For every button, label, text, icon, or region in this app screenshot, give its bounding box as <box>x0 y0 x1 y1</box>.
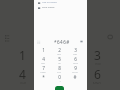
staticText: MNO <box>73 62 78 64</box>
button[interactable]: Dialpad options <box>3 33 13 43</box>
staticText: 4 <box>19 66 26 82</box>
staticText: GHI <box>41 62 45 64</box>
staticText: DEF <box>73 53 77 55</box>
button[interactable]: * <box>36 74 50 82</box>
staticText: *646# <box>54 39 70 45</box>
staticText: 6 <box>94 66 101 82</box>
button[interactable]: Dialpad options <box>37 40 41 44</box>
button[interactable]: Backspace <box>80 40 83 43</box>
button[interactable]: Backspace <box>105 32 115 42</box>
staticText: TUV <box>57 71 61 73</box>
staticText: 4 <box>42 56 45 62</box>
staticText: 5 <box>58 56 61 62</box>
staticText: 0 <box>58 74 61 80</box>
button[interactable]: 1 <box>36 47 50 55</box>
button[interactable]: 6 <box>68 56 82 64</box>
button[interactable]: 3 <box>68 47 82 55</box>
staticText: 2 <box>58 47 61 53</box>
button[interactable]: Send messg <box>38 5 84 10</box>
staticText: # <box>73 74 77 80</box>
button[interactable]: 2 <box>52 47 66 55</box>
button[interactable]: 8 <box>52 65 66 73</box>
staticText: 7 <box>42 65 45 71</box>
staticText: PQRS <box>40 71 46 73</box>
button[interactable]: # <box>68 74 82 82</box>
staticText: 9 <box>74 65 77 71</box>
button[interactable]: 0 <box>52 74 66 82</box>
button[interactable]: 6 <box>86 66 108 84</box>
button[interactable]: 7 <box>36 65 50 73</box>
staticText: JKL <box>58 62 61 64</box>
button[interactable]: Add to contact <box>38 0 84 5</box>
staticText: WXYZ <box>72 71 78 73</box>
button[interactable]: 1 <box>11 47 33 65</box>
button[interactable]: Call <box>55 86 64 90</box>
button[interactable]: 5 <box>52 56 66 64</box>
staticText: 8 <box>58 65 61 71</box>
staticText: 1 <box>42 47 45 53</box>
staticText: 1 <box>19 47 26 63</box>
staticText: Add to contact <box>42 1 57 4</box>
button[interactable]: 4 <box>36 56 50 64</box>
button[interactable]: 3 <box>86 47 108 65</box>
button[interactable]: 9 <box>68 65 82 73</box>
staticText: 3 <box>74 47 77 53</box>
staticText: ABC <box>57 53 61 55</box>
staticText: Send messg <box>42 6 55 9</box>
button[interactable]: 4 <box>11 66 33 84</box>
staticText: 6 <box>74 56 77 62</box>
staticText: + <box>59 80 61 82</box>
staticText: * <box>42 74 45 80</box>
staticText: 3 <box>94 47 101 63</box>
